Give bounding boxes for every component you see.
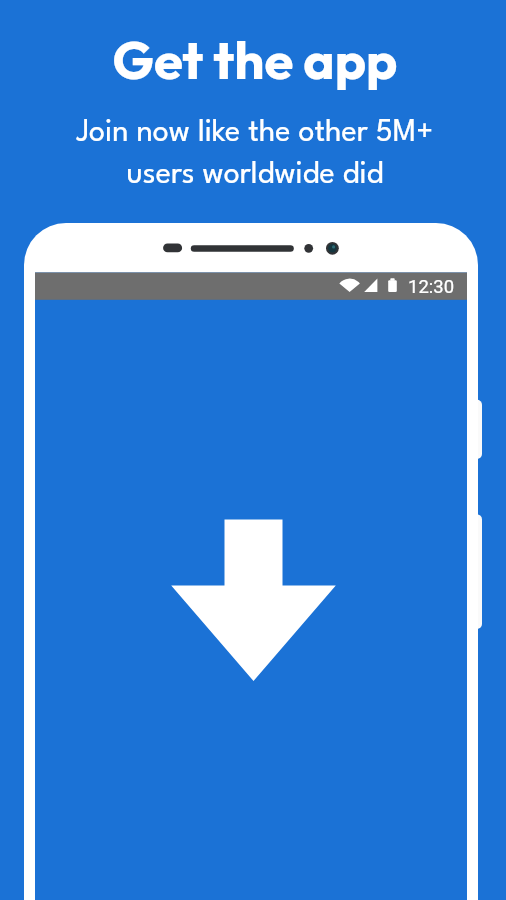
- staticText: Join now like the other 5M+ users worldw…: [2, 119, 506, 190]
- button[interactable]: Download the app: [171, 519, 336, 682]
- staticText: 12:30: [408, 276, 455, 298]
- staticText: Get the app: [2, 26, 506, 92]
